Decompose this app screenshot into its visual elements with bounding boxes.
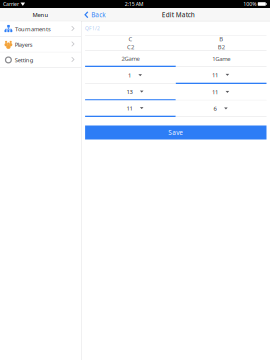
staticText: Players (15, 40, 33, 48)
staticText: 6 (214, 104, 217, 112)
staticText: Tournaments (15, 25, 51, 33)
staticText: 2Game (121, 54, 139, 62)
button[interactable]: Back (81, 8, 105, 21)
button[interactable]: Save (85, 125, 266, 139)
staticText: 1Game (212, 55, 230, 63)
staticText: C2 (127, 43, 134, 51)
staticText: 2:15 AM (125, 0, 144, 8)
staticText: Setting (15, 56, 34, 64)
button[interactable]: Players (0, 37, 81, 52)
button[interactable]: Tournaments (0, 21, 81, 37)
button[interactable]: 11 (85, 100, 176, 117)
staticText: 1 (128, 71, 131, 79)
staticText: 11 (212, 88, 218, 96)
staticText: Menu (32, 11, 48, 19)
button[interactable]: 13 (85, 84, 176, 100)
staticText: Back (91, 10, 105, 19)
staticText: Carrier (3, 0, 19, 8)
staticText: C (128, 35, 132, 43)
button[interactable]: Setting (0, 52, 81, 68)
staticText: 11 (126, 104, 132, 112)
staticText: B (219, 35, 223, 43)
staticText: QF1/2 (85, 25, 100, 32)
button[interactable]: 1 (85, 67, 176, 84)
staticText: 11 (212, 71, 218, 79)
staticText: Save (168, 128, 183, 137)
staticText: 100% (243, 0, 256, 8)
button[interactable]: 11 (176, 84, 266, 100)
staticText: 13 (126, 88, 132, 96)
staticText: Edit Match (162, 10, 195, 19)
button[interactable]: 11 (176, 67, 266, 84)
staticText: B2 (218, 43, 225, 51)
button[interactable]: 6 (176, 100, 266, 117)
